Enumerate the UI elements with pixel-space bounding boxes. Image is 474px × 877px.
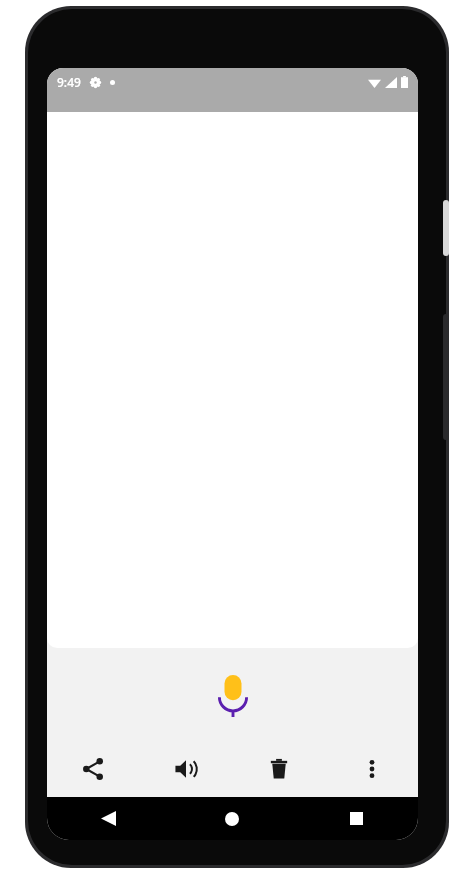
- button[interactable]: Home: [170, 797, 294, 840]
- staticText: 9:49: [57, 74, 81, 90]
- button[interactable]: Delete: [232, 746, 325, 792]
- button[interactable]: More options: [325, 746, 418, 792]
- button[interactable]: Volume: [139, 746, 232, 792]
- button[interactable]: Record: [209, 670, 257, 722]
- button[interactable]: Back: [47, 797, 170, 840]
- button[interactable]: Share: [47, 746, 139, 792]
- button[interactable]: Recent apps: [294, 797, 418, 840]
